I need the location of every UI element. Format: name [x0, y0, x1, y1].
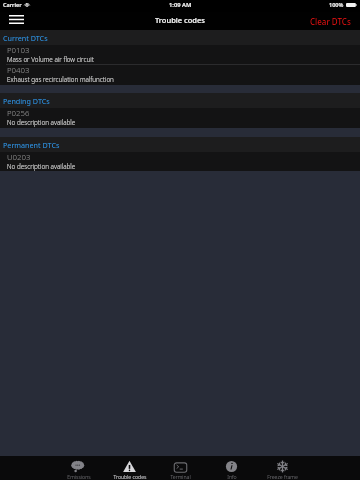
staticText: Mass or Volume air flow circuit: [7, 55, 94, 64]
button[interactable]: P0403: [0, 65, 360, 85]
button[interactable]: U0203: [0, 152, 360, 171]
button[interactable]: Menu: [0, 12, 32, 30]
staticText: P0256: [7, 108, 30, 119]
staticText: P0103: [7, 45, 30, 56]
staticText: Pending DTCs: [3, 96, 50, 106]
button[interactable]: Emissions: [53, 456, 104, 480]
staticText: Trouble codes: [155, 15, 205, 25]
staticText: Trouble codes: [113, 473, 147, 480]
staticText: Exhaust gas recirculation malfunction: [7, 75, 114, 84]
staticText: Carrier: [3, 1, 22, 8]
staticText: U0203: [7, 152, 31, 163]
staticText: Info: [227, 473, 237, 480]
staticText: No description available: [7, 118, 76, 127]
staticText: 1:09 AM: [169, 1, 192, 9]
staticText: Emissions: [67, 473, 91, 480]
staticText: No description available: [7, 162, 76, 171]
button[interactable]: Freeze frame: [257, 456, 308, 480]
staticText: Clear DTCs: [310, 16, 351, 27]
button[interactable]: P0103: [0, 45, 360, 65]
staticText: Terminal: [170, 473, 191, 480]
staticText: P0403: [7, 65, 30, 76]
staticText: Freeze frame: [267, 473, 298, 480]
staticText: Permanent DTCs: [3, 140, 60, 150]
button[interactable]: Trouble codes: [104, 456, 155, 480]
button[interactable]: Clear DTCs: [304, 12, 360, 30]
staticText: 100%: [329, 1, 344, 8]
button[interactable]: P0256: [0, 108, 360, 128]
button[interactable]: Terminal: [155, 456, 206, 480]
button[interactable]: Info: [206, 456, 257, 480]
staticText: Current DTCs: [3, 33, 48, 43]
